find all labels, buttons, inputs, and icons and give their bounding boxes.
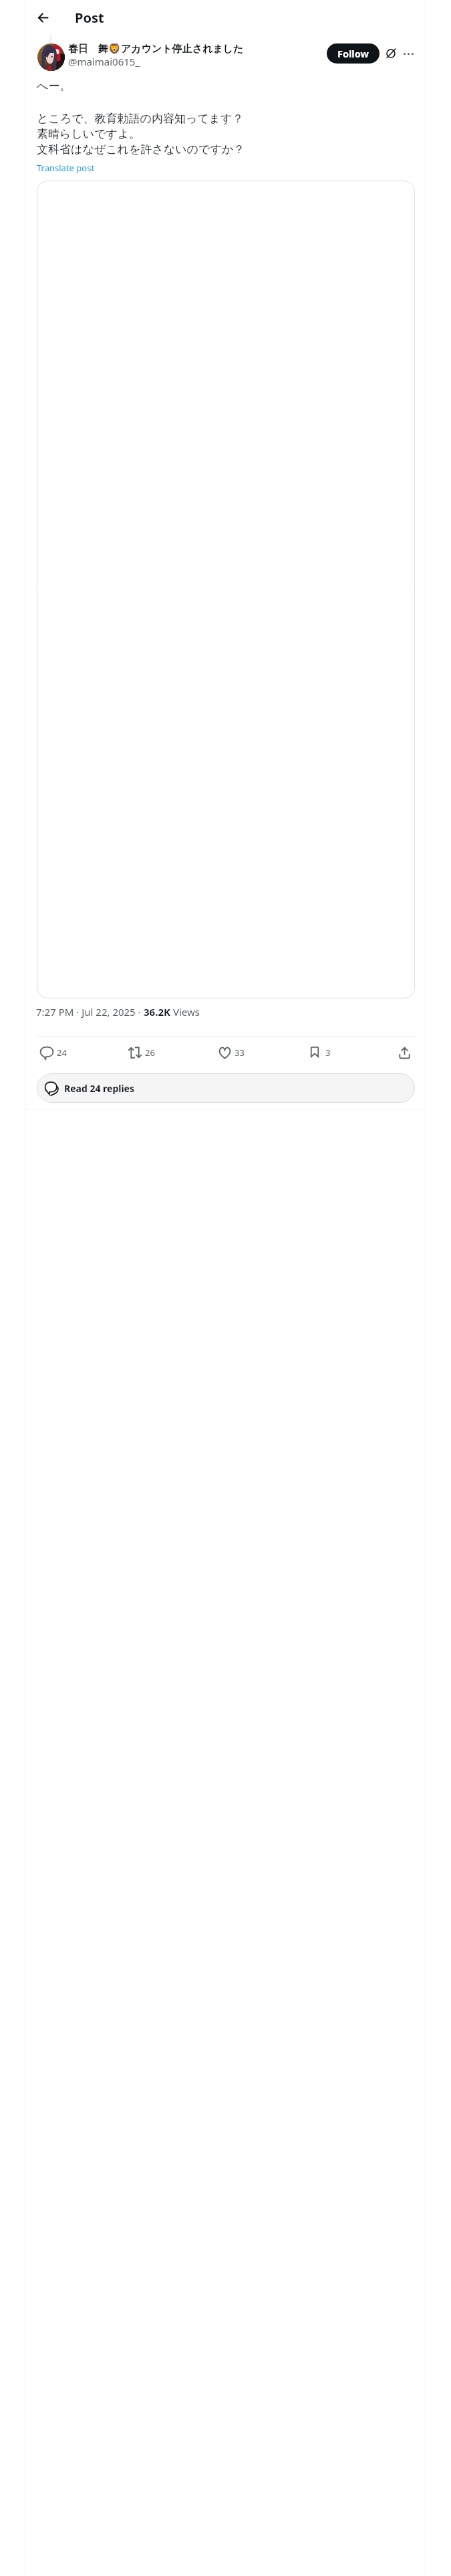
staticText: ところで、教育勅語の内容知ってます？ 素晴らしいですよ。 文科省はなぜこれを許さ… [37, 112, 245, 156]
button[interactable]: More options [400, 45, 417, 62]
button[interactable]: 24 [37, 1042, 69, 1063]
button[interactable]: Share [396, 1044, 413, 1061]
staticText: 3 [325, 1047, 331, 1059]
button[interactable]: 33 [216, 1042, 247, 1063]
staticText: 26 [145, 1047, 155, 1059]
staticText: Translate post [37, 162, 95, 174]
staticText: 33 [235, 1047, 245, 1059]
button[interactable]: Grok [382, 45, 400, 62]
button[interactable]: Read 24 replies [37, 1073, 415, 1103]
staticText: Follow [337, 47, 369, 60]
staticText: 36.2K [144, 1005, 170, 1018]
staticText: へー。 [37, 79, 71, 93]
button[interactable]: 3 [307, 1042, 333, 1063]
button[interactable]: Profile photo [37, 43, 65, 71]
staticText: 7:27 PM · Jul 22, 2025 · [36, 1005, 144, 1018]
button[interactable]: Follow [327, 43, 380, 64]
button[interactable]: Back [35, 10, 51, 25]
staticText: Post [75, 9, 104, 27]
staticText: Views [170, 1005, 200, 1018]
staticText: @maimai0615_ [68, 55, 140, 68]
staticText: 24 [57, 1047, 67, 1059]
staticText: 春日 舞🦁アカウント停止されました [68, 41, 244, 55]
staticText: Read 24 replies [64, 1082, 134, 1095]
button[interactable]: 26 [125, 1042, 158, 1063]
button[interactable]: Translate post [37, 162, 95, 174]
